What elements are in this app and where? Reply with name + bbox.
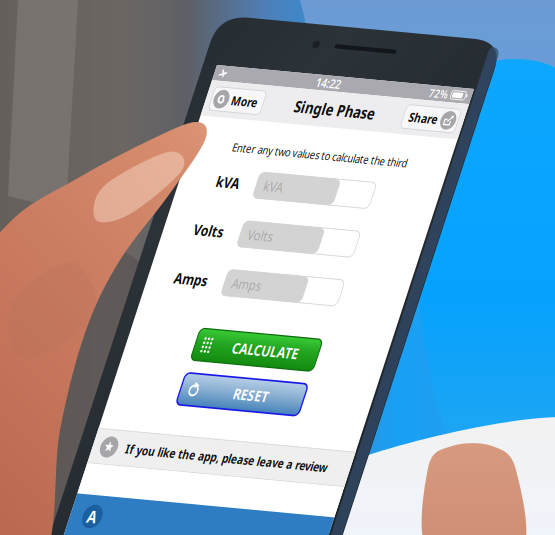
staticText: If you like the app, please leave a revi… [48,443,343,463]
button[interactable]: More [8,25,83,53]
staticText: Amps [122,240,165,261]
staticText: kVA [53,123,87,146]
staticText: Enter any two values to calculate the th… [60,84,315,102]
button[interactable]: RESET [98,359,277,397]
staticText: Volts [122,182,159,203]
staticText: Share [296,29,338,49]
staticText: RESET [175,366,226,389]
button[interactable]: If you like the app, please leave a revi… [0,432,375,474]
button[interactable]: Share [288,25,367,53]
staticText: kVA [122,124,150,145]
button[interactable]: CALCULATE [98,306,277,344]
staticText: CALCULATE [152,313,249,336]
staticText: Volts [43,181,87,204]
staticText: Single Phase [129,27,246,51]
